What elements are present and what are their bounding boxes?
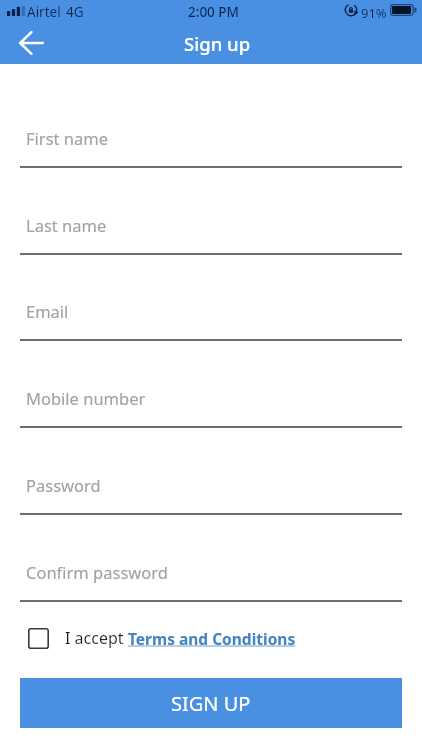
staticText: Airtel: [27, 3, 61, 21]
button[interactable]: Email: [20, 294, 402, 341]
button[interactable]: Mobile number: [20, 381, 402, 428]
staticText: 4G: [66, 3, 84, 21]
staticText: Last name: [26, 214, 107, 236]
staticText: Sign up: [184, 31, 251, 56]
staticText: Password: [26, 474, 101, 496]
staticText: Confirm password: [26, 561, 168, 583]
staticText: SIGN UP: [171, 690, 251, 717]
staticText: Email: [26, 300, 69, 322]
button[interactable]: Accept terms and conditions: [28, 628, 49, 649]
button[interactable]: Last name: [20, 208, 402, 255]
staticText: First name: [26, 127, 108, 149]
staticText: I accept: [65, 627, 128, 649]
button[interactable]: First name: [20, 121, 402, 168]
staticText: 91%: [361, 4, 387, 22]
button[interactable]: Back: [6, 22, 56, 64]
button[interactable]: Terms and Conditions: [128, 628, 296, 649]
button[interactable]: SIGN UP: [20, 678, 402, 728]
staticText: 2:00 PM: [188, 3, 239, 21]
button[interactable]: Password: [20, 468, 402, 515]
button[interactable]: Confirm password: [20, 555, 402, 602]
staticText: Mobile number: [26, 387, 146, 409]
